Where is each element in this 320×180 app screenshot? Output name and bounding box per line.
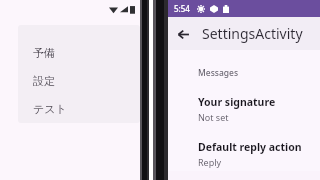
staticText: テスト: [33, 102, 67, 116]
staticText: Not set: [198, 111, 229, 123]
button[interactable]: Navigate up: [168, 19, 198, 49]
staticText: 設定: [33, 74, 55, 88]
staticText: SettingsActivity: [202, 24, 303, 43]
button[interactable]: Default reply action: [168, 140, 320, 168]
button[interactable]: テスト: [18, 95, 140, 123]
button[interactable]: Your signature: [168, 95, 320, 123]
button[interactable]: 設定: [18, 67, 140, 95]
button[interactable]: 予備: [18, 25, 140, 67]
staticText: 予備: [33, 46, 55, 60]
staticText: Reply: [198, 156, 222, 168]
staticText: 5:54: [174, 3, 190, 14]
staticText: Default reply action: [198, 140, 302, 154]
staticText: Messages: [198, 67, 239, 79]
staticText: Your signature: [198, 95, 276, 109]
